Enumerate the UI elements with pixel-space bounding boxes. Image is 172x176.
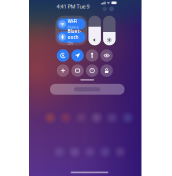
button[interactable]: Volume <box>88 16 101 45</box>
staticText: Wi-Fi <box>67 18 76 24</box>
button[interactable]: Add Control <box>57 64 69 77</box>
button[interactable]: Brightness <box>103 16 115 45</box>
staticText: 4:41 PM Tue 9 <box>56 3 89 10</box>
button[interactable]: Bluetooth <box>57 31 85 43</box>
button[interactable]: Wi-Fi <box>57 18 85 30</box>
button[interactable]: Airplane Mode <box>71 49 84 62</box>
button[interactable]: Flashlight <box>86 49 98 62</box>
button[interactable]: Focus <box>102 7 107 11</box>
staticText: On <box>67 40 72 46</box>
button[interactable]: Screen Mirroring <box>71 64 84 77</box>
button[interactable]: Power <box>109 7 114 11</box>
staticText: Home <box>67 24 78 30</box>
staticText: Bluetooth <box>67 28 80 40</box>
button[interactable]: Timer <box>86 64 98 77</box>
button[interactable]: Lock <box>100 64 113 77</box>
button[interactable]: Rotation Lock <box>57 49 69 62</box>
button[interactable]: Night Shift <box>100 49 113 62</box>
